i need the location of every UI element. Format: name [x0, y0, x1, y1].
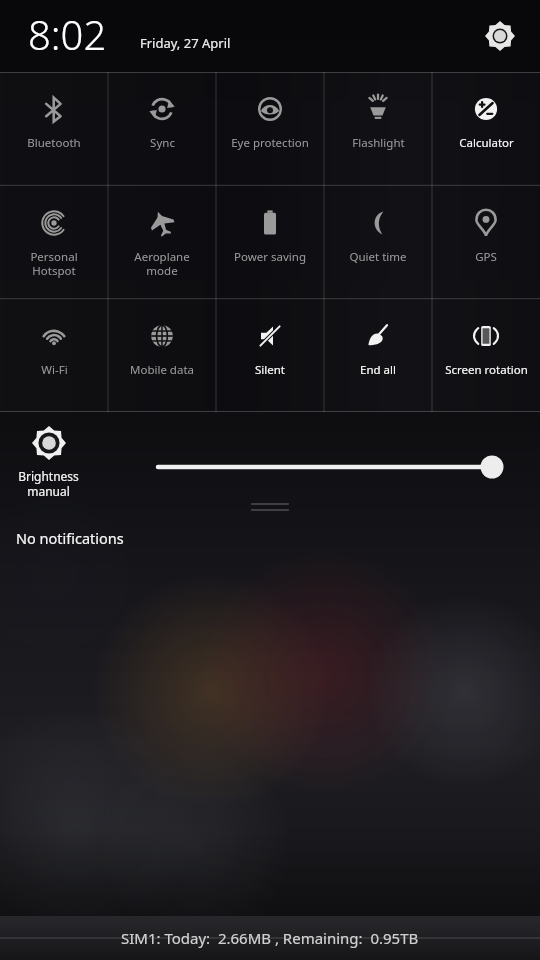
button[interactable]: Screen rotation	[432, 299, 540, 412]
button[interactable]: Sync	[108, 72, 216, 186]
button[interactable]: Bluetooth	[0, 72, 108, 186]
button[interactable]: GPS	[432, 186, 540, 299]
staticText: Quiet time	[349, 249, 407, 265]
staticText: Sync	[150, 135, 175, 151]
button[interactable]: Eye protection	[216, 72, 324, 186]
staticText: Aeroplane mode	[134, 249, 190, 278]
staticText: Screen rotation	[445, 362, 528, 378]
staticText: Friday, 27 April	[140, 34, 231, 52]
staticText: Brightness manual	[18, 468, 79, 499]
staticText: Eye protection	[231, 135, 309, 151]
button[interactable]: Calculator	[432, 72, 540, 186]
staticText: No notifications	[16, 528, 124, 548]
staticText: Mobile data	[130, 362, 194, 378]
staticText: SIM1: Today: 2.66MB , Remaining: 0.95TB	[121, 928, 419, 948]
button[interactable]: Settings	[478, 14, 522, 58]
staticText: End all	[360, 362, 396, 378]
button[interactable]: Personal Hotspot	[0, 186, 108, 299]
button[interactable]: End all	[324, 299, 432, 412]
staticText: Power saving	[234, 249, 306, 265]
button[interactable]: Brightness manual	[0, 412, 540, 520]
button[interactable]: Quiet time	[324, 186, 432, 299]
button[interactable]: Aeroplane mode	[108, 186, 216, 299]
staticText: Calculator	[459, 135, 514, 151]
staticText: Flashlight	[352, 135, 405, 151]
button[interactable]: Silent	[216, 299, 324, 412]
button[interactable]: Wi-Fi	[0, 299, 108, 412]
staticText: Wi-Fi	[41, 362, 68, 378]
button[interactable]: Flashlight	[324, 72, 432, 186]
staticText: 8:02	[28, 7, 107, 61]
button[interactable]: Mobile data	[108, 299, 216, 412]
staticText: Personal Hotspot	[30, 249, 78, 278]
button[interactable]: Power saving	[216, 186, 324, 299]
staticText: Bluetooth	[27, 135, 81, 151]
staticText: Silent	[255, 362, 285, 378]
staticText: GPS	[475, 249, 497, 265]
